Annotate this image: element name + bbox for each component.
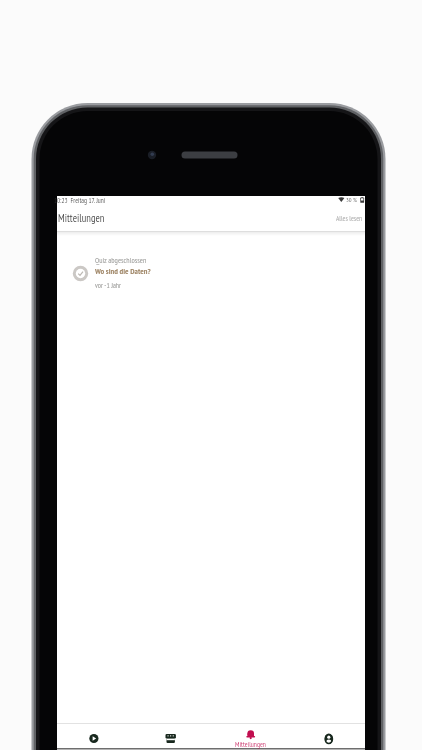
staticText: Mitteilungen xyxy=(58,211,105,225)
staticText: 30 % xyxy=(346,196,357,204)
button[interactable] xyxy=(288,727,365,748)
button[interactable] xyxy=(134,727,211,748)
button[interactable] xyxy=(211,727,288,748)
button[interactable]: Quiz abgeschlossen xyxy=(57,250,365,296)
staticText: Quiz abgeschlossen xyxy=(95,255,147,265)
button[interactable] xyxy=(57,727,134,748)
staticText: 10:23 Freitag 17. Juni xyxy=(54,196,106,205)
staticText: Mitteilungen xyxy=(235,740,266,749)
staticText: vor -1 Jahr xyxy=(95,281,121,290)
staticText: Wo sind die Daten? xyxy=(95,266,151,277)
button[interactable]: Alles lesen xyxy=(336,214,363,223)
